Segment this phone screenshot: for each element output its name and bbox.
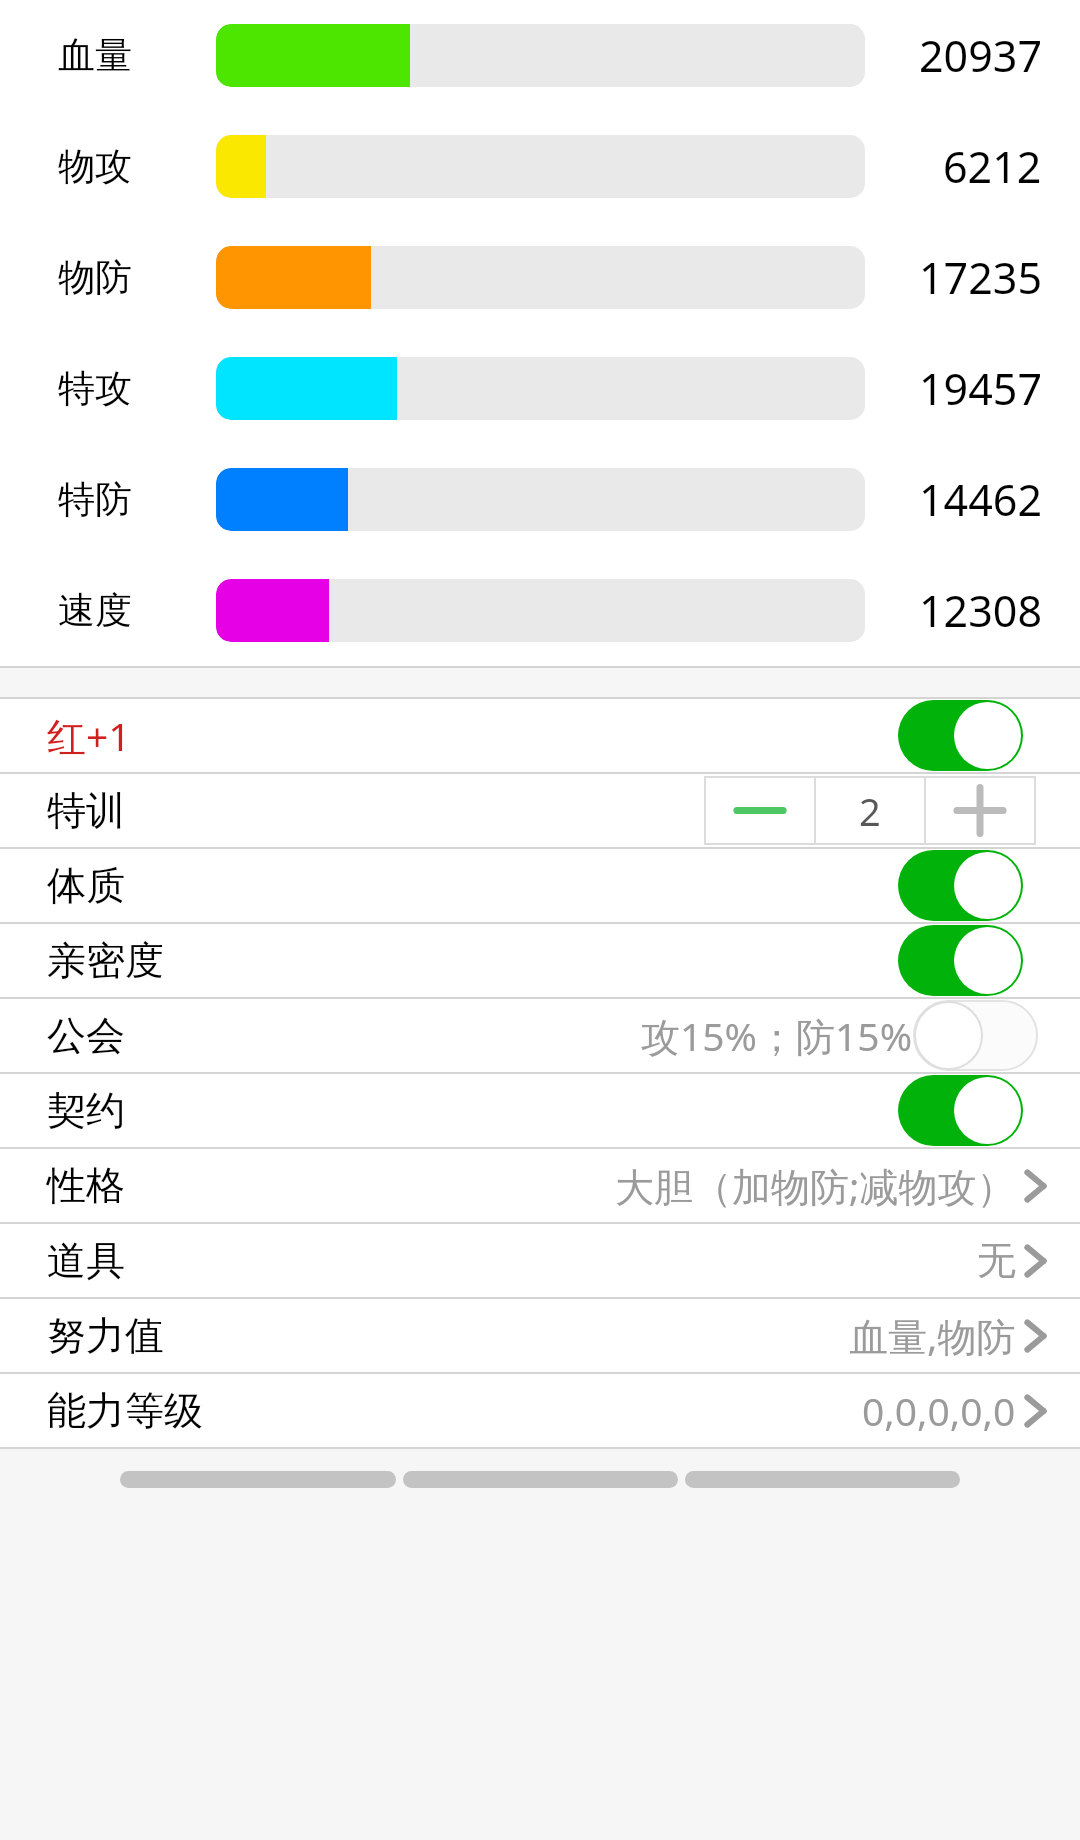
- staticText: 大胆（加物防;减物攻）: [615, 1159, 1016, 1212]
- staticText: 无: [977, 1236, 1016, 1285]
- staticText: 公会: [47, 1011, 125, 1060]
- staticText: 契约: [47, 1086, 125, 1135]
- button[interactable]: 红+1: [0, 699, 1080, 772]
- button[interactable]: Switch on: [898, 925, 1023, 996]
- button[interactable]: 能力等级: [0, 1374, 1080, 1447]
- staticText: 特训: [47, 786, 125, 835]
- staticText: 14462: [919, 470, 1042, 529]
- button[interactable]: Switch on: [898, 850, 1023, 921]
- staticText: 0,0,0,0,0: [862, 1384, 1016, 1437]
- staticText: 特攻: [58, 365, 132, 412]
- staticText: 亲密度: [47, 936, 164, 985]
- button[interactable]: 道具: [0, 1224, 1080, 1297]
- button[interactable]: Tab 1: [120, 1471, 396, 1488]
- staticText: 特防: [58, 476, 132, 523]
- button[interactable]: Switch on: [898, 1075, 1023, 1146]
- staticText: 2: [859, 785, 881, 837]
- staticText: 20937: [919, 26, 1042, 85]
- staticText: 性格: [47, 1161, 125, 1210]
- staticText: 物防: [58, 254, 132, 301]
- button[interactable]: 契约: [0, 1074, 1080, 1147]
- staticText: 17235: [919, 248, 1042, 307]
- staticText: 血量: [58, 32, 132, 79]
- button[interactable]: 努力值: [0, 1299, 1080, 1372]
- staticText: 物攻: [58, 143, 132, 190]
- button[interactable]: Switch off: [913, 1000, 1038, 1071]
- staticText: 努力值: [47, 1311, 164, 1360]
- staticText: 能力等级: [47, 1386, 203, 1435]
- button[interactable]: 体质: [0, 849, 1080, 922]
- staticText: 6212: [943, 137, 1042, 196]
- button[interactable]: 公会: [0, 999, 1080, 1072]
- button[interactable]: Tab 2: [403, 1471, 678, 1488]
- staticText: 攻15%；防15%: [641, 1009, 913, 1062]
- button[interactable]: Increase: [925, 777, 1035, 844]
- staticText: 速度: [58, 587, 132, 634]
- button[interactable]: 性格: [0, 1149, 1080, 1222]
- staticText: 体质: [47, 861, 125, 910]
- staticText: 19457: [919, 359, 1042, 418]
- button[interactable]: Tab 3: [685, 1471, 960, 1488]
- staticText: 血量,物防: [849, 1309, 1016, 1362]
- staticText: 道具: [47, 1236, 125, 1285]
- staticText: 12308: [919, 581, 1042, 640]
- button[interactable]: 亲密度: [0, 924, 1080, 997]
- button[interactable]: Switch on: [898, 700, 1023, 771]
- staticText: 红+1: [47, 709, 131, 762]
- button[interactable]: Decrease: [705, 777, 815, 844]
